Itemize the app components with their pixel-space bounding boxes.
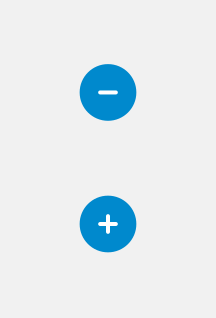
button[interactable]: Zoom out [80,64,136,121]
button[interactable]: Zoom in [80,196,136,252]
